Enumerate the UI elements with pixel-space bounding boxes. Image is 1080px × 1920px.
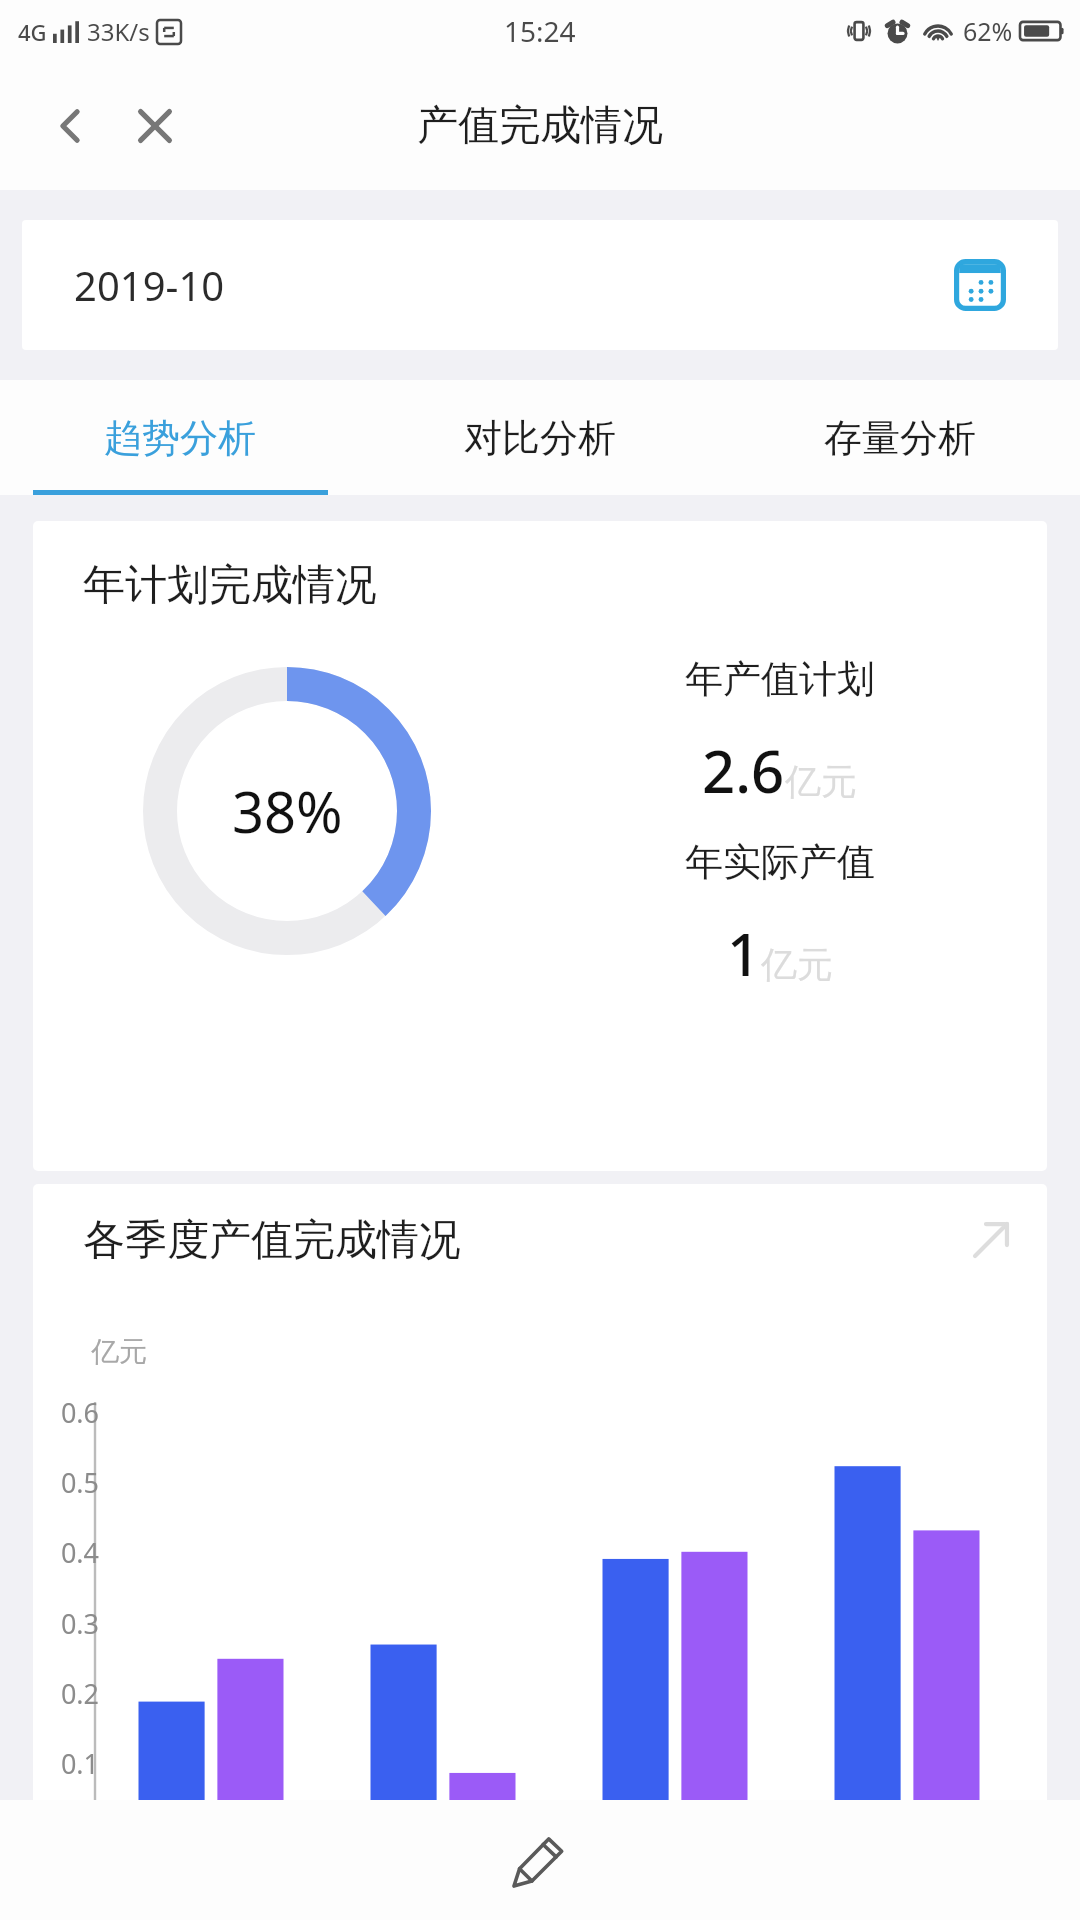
staticText: 62% — [963, 14, 1013, 48]
staticText: 0.1 — [41, 1745, 99, 1782]
staticText: 存量分析 — [824, 414, 976, 462]
button[interactable]: Back — [40, 95, 102, 157]
button[interactable]: 对比分析 — [360, 380, 720, 495]
staticText: 年实际产值 — [685, 838, 875, 886]
staticText: 对比分析 — [464, 414, 616, 462]
staticText: 1 — [727, 914, 761, 993]
staticText: 0.6 — [41, 1394, 99, 1431]
button[interactable]: Expand chart — [959, 1208, 1023, 1272]
staticText: 各季度产值完成情况 — [83, 1214, 461, 1267]
staticText: 15:24 — [504, 12, 576, 50]
button[interactable]: Edit — [492, 1812, 588, 1908]
staticText: 33K/s — [87, 15, 150, 48]
staticText: 2.6 — [702, 731, 785, 810]
other: Pick date — [952, 257, 1008, 313]
staticText: 年产值计划 — [685, 655, 875, 703]
staticText: 亿元 — [91, 1334, 147, 1369]
staticText: 38% — [232, 773, 343, 849]
staticText: 趋势分析 — [104, 414, 256, 462]
staticText: 年计划完成情况 — [83, 559, 377, 612]
staticText: 产值完成情况 — [417, 100, 663, 152]
button[interactable]: Close — [124, 95, 186, 157]
staticText: 亿元 — [785, 759, 857, 804]
staticText: 2019-10 — [74, 258, 225, 312]
staticText: 0.2 — [41, 1675, 99, 1712]
staticText: 亿元 — [761, 942, 833, 987]
button[interactable]: 2019-10 — [22, 220, 1058, 350]
staticText: 0.3 — [41, 1605, 99, 1642]
staticText: 0.4 — [41, 1534, 99, 1571]
staticText: 4G — [18, 17, 47, 47]
staticText: 0.5 — [41, 1464, 99, 1501]
button[interactable]: 存量分析 — [720, 380, 1080, 495]
button[interactable]: 趋势分析 — [0, 380, 360, 495]
